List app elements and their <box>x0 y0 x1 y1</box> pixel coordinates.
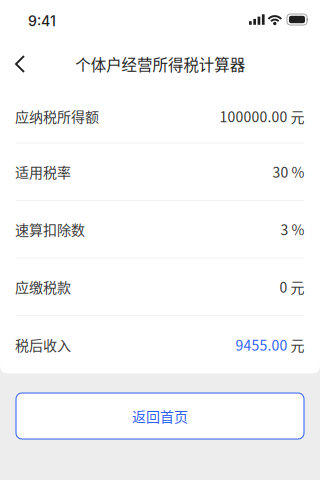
staticText: 个体户经营所得税计算器 <box>75 53 245 75</box>
staticText: 适用税率 <box>15 162 71 182</box>
button[interactable]: Back <box>0 49 40 79</box>
staticText: 元 <box>287 106 304 126</box>
staticText: 元 <box>287 277 304 297</box>
staticText: 元 <box>287 335 304 355</box>
staticText: 3 <box>280 219 288 239</box>
staticText: % <box>288 162 304 182</box>
staticText: 返回首页 <box>132 406 188 426</box>
staticText: 税后收入 <box>15 335 71 355</box>
staticText: 应缴税款 <box>15 277 71 297</box>
staticText: 100000.00 <box>219 106 287 126</box>
button[interactable]: 返回首页 <box>16 393 304 439</box>
staticText: 0 <box>279 277 287 297</box>
staticText: 30 <box>272 162 288 182</box>
staticText: 速算扣除数 <box>15 219 85 239</box>
staticText: 9455.00 <box>235 335 287 355</box>
staticText: % <box>288 219 304 239</box>
staticText: 应纳税所得额 <box>15 106 99 126</box>
staticText: 9:41 <box>28 12 56 30</box>
